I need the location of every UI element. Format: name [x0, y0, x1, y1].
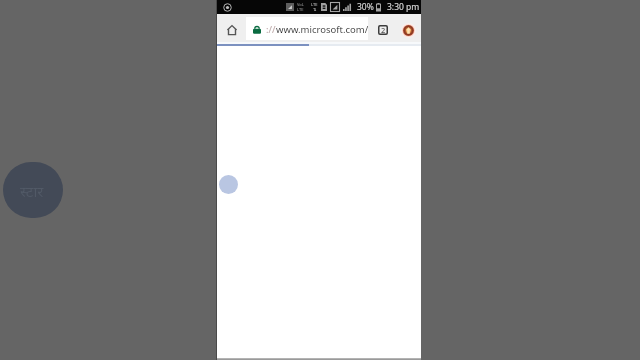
staticText: स्टार: [20, 181, 44, 201]
staticText: ://: [266, 23, 276, 36]
button[interactable]: ://: [246, 17, 368, 40]
button[interactable]: Tabs: [368, 14, 397, 42]
button[interactable]: Menu: [397, 14, 421, 42]
staticText: LTE: [297, 7, 304, 12]
staticText: 3:30 pm: [387, 1, 420, 13]
staticText: 30%: [357, 1, 374, 13]
button[interactable]: Home: [217, 14, 246, 42]
staticText: ⇅: [313, 7, 317, 12]
staticText: www.microsoft.com/e: [276, 23, 368, 36]
staticText: VoL: [297, 2, 304, 7]
staticText: LTE: [311, 2, 318, 7]
staticText: 2: [381, 25, 386, 35]
